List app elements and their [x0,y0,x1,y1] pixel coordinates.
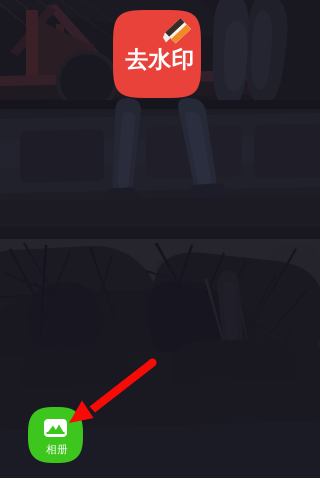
staticText: 去水印 [125,46,194,74]
button[interactable] [113,10,201,98]
button[interactable] [28,407,83,463]
staticText: 相册 [46,443,68,456]
